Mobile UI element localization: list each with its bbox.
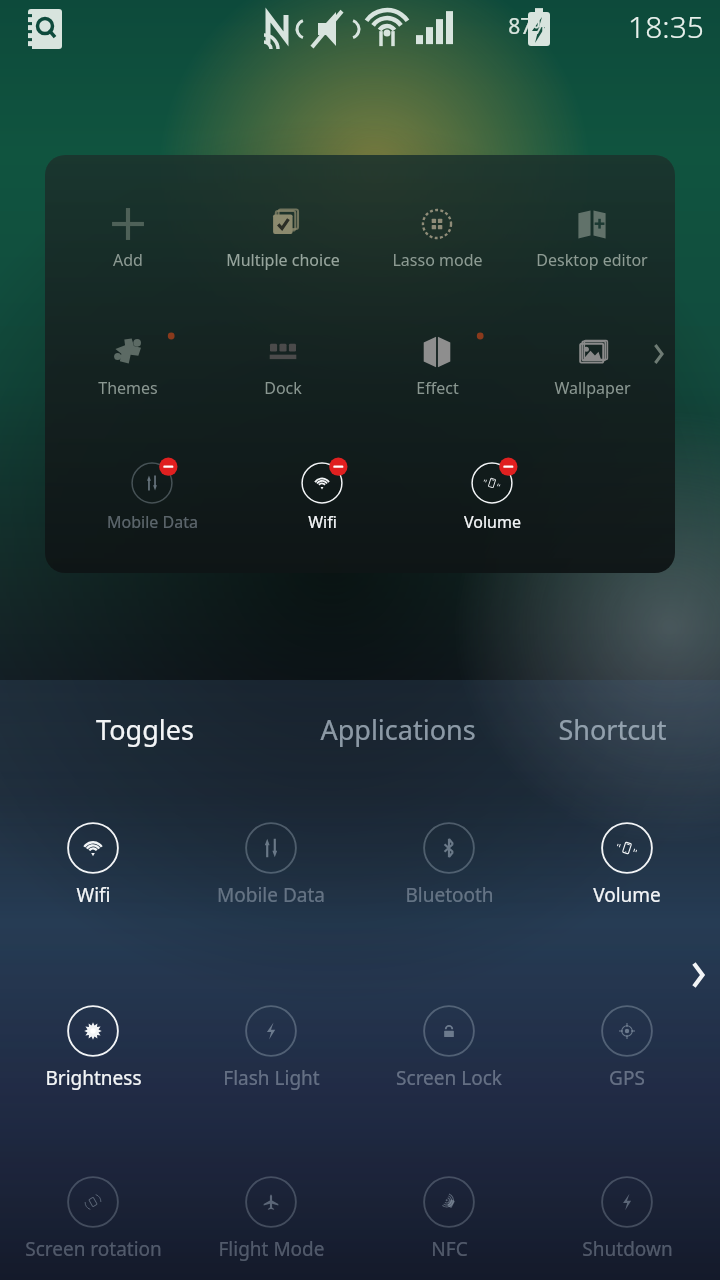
staticText: Desktop editor xyxy=(536,249,648,271)
staticText: GPS xyxy=(609,1065,645,1091)
button[interactable]: Lasso mode xyxy=(365,204,509,271)
staticText: Shutdown xyxy=(582,1236,673,1262)
staticText: Themes xyxy=(98,377,158,399)
staticText: Mobile Data xyxy=(107,511,198,533)
staticText: Brightness xyxy=(45,1065,142,1091)
staticText: Wallpaper xyxy=(554,377,631,399)
staticText: Screen Lock xyxy=(396,1065,502,1091)
button[interactable]: Next page xyxy=(645,339,675,369)
staticText: Volume xyxy=(464,511,521,533)
button[interactable]: Mobile Data xyxy=(186,818,356,908)
button[interactable]: Volume xyxy=(407,459,577,533)
button[interactable]: Next toggles page xyxy=(682,956,720,994)
button[interactable]: Desktop editor xyxy=(520,204,664,271)
button[interactable]: Add xyxy=(56,204,200,271)
staticText: Add xyxy=(113,249,143,271)
staticText: Wifi xyxy=(76,882,111,908)
button[interactable]: GPS xyxy=(542,1001,712,1091)
button[interactable]: Flash Light xyxy=(186,1001,356,1091)
staticText: Applications xyxy=(320,711,476,748)
button[interactable]: Volume xyxy=(542,818,712,908)
staticText: Toggles xyxy=(96,711,194,748)
button[interactable]: Multiple choice xyxy=(211,204,355,271)
staticText: Flash Light xyxy=(223,1065,320,1091)
staticText: Lasso mode xyxy=(392,249,483,271)
button[interactable]: Dock xyxy=(211,332,355,399)
button[interactable]: Brightness xyxy=(8,1001,178,1091)
button[interactable]: Screen Lock xyxy=(364,1001,534,1091)
button[interactable]: Wifi xyxy=(8,818,178,908)
button[interactable]: Screen rotation xyxy=(8,1172,178,1262)
button[interactable]: Shutdown xyxy=(542,1172,712,1262)
staticText: Flight Mode xyxy=(218,1236,325,1262)
button[interactable]: Themes xyxy=(56,332,200,399)
button[interactable]: NFC xyxy=(364,1172,534,1262)
staticText: Volume xyxy=(593,882,661,908)
staticText: Dock xyxy=(264,377,302,399)
staticText: Multiple choice xyxy=(226,249,340,271)
button[interactable]: Applications xyxy=(290,698,505,760)
button[interactable]: Toggles xyxy=(0,698,290,760)
staticText: Effect xyxy=(416,377,459,399)
staticText: 18:35 xyxy=(628,6,704,47)
staticText: Bluetooth xyxy=(405,882,494,908)
staticText: Shortcut xyxy=(558,711,667,748)
button[interactable]: Bluetooth xyxy=(364,818,534,908)
button[interactable]: Effect xyxy=(365,332,509,399)
staticText: Screen rotation xyxy=(25,1236,162,1262)
button[interactable]: Wifi xyxy=(237,459,407,533)
button[interactable]: Shortcut xyxy=(505,698,720,760)
staticText: Wifi xyxy=(308,511,337,533)
staticText: Mobile Data xyxy=(217,882,325,908)
staticText: 87% xyxy=(508,12,550,41)
button[interactable]: Mobile Data xyxy=(67,459,237,533)
button[interactable]: Flight Mode xyxy=(186,1172,356,1262)
staticText: NFC xyxy=(431,1236,468,1262)
button[interactable]: Wallpaper xyxy=(520,332,664,399)
